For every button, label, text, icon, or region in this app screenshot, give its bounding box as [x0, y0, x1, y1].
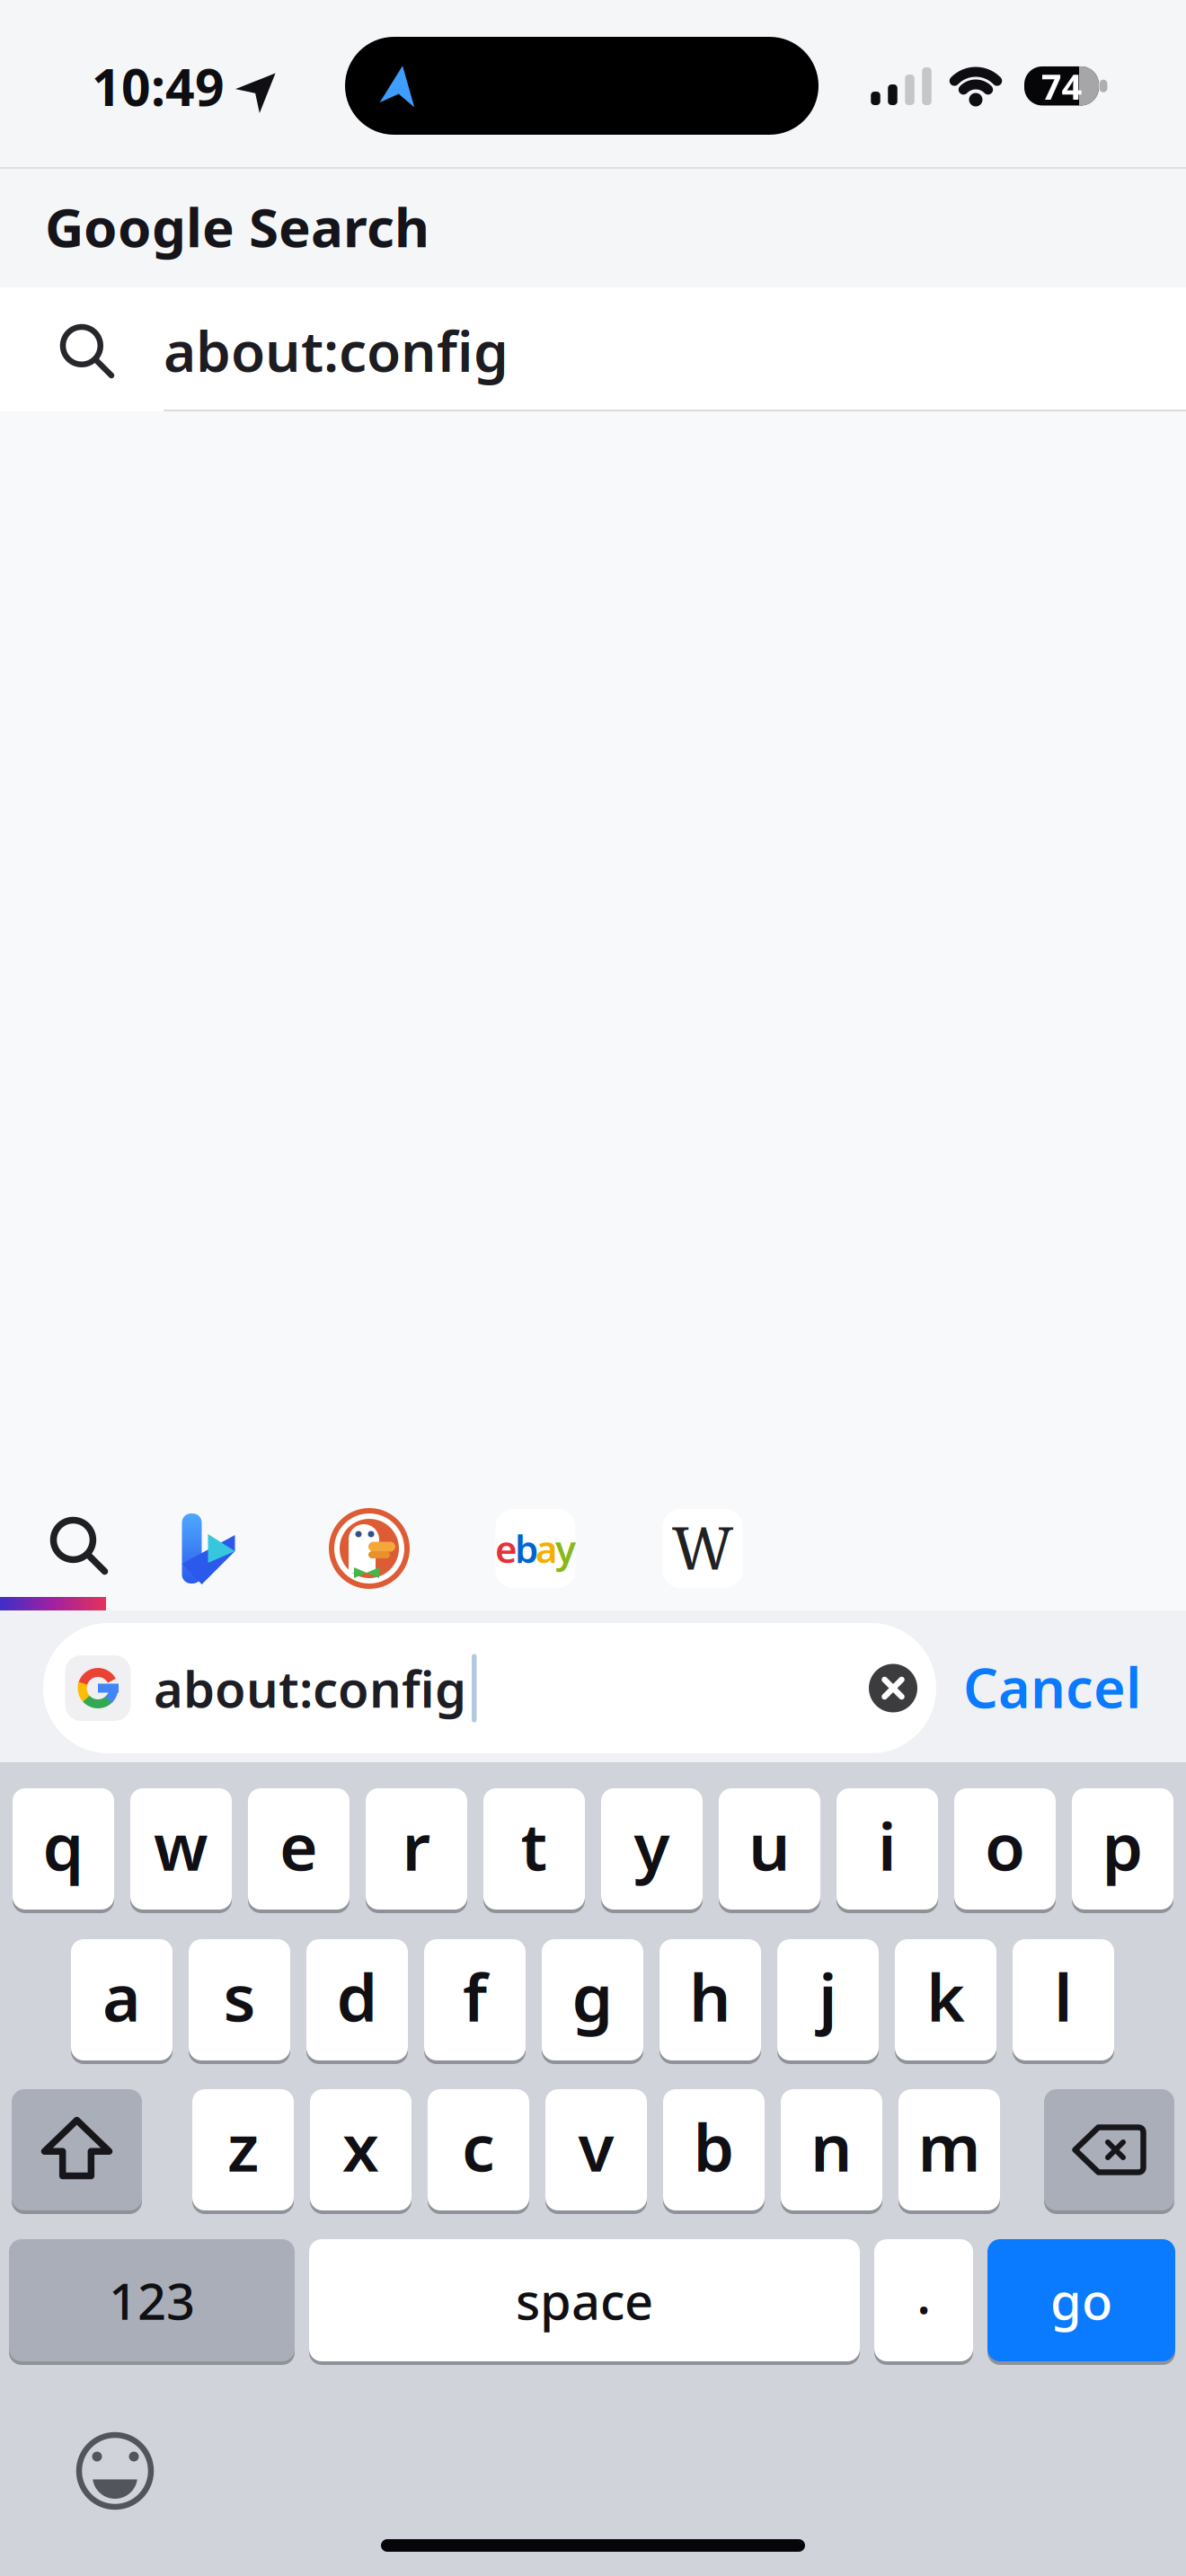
button[interactable]: k [895, 1937, 996, 2062]
button[interactable]: o [954, 1786, 1056, 1911]
button[interactable]: n [781, 2087, 882, 2212]
staticText: b [515, 1523, 538, 1574]
staticText: w [154, 1802, 208, 1889]
button[interactable]: q [13, 1786, 114, 1911]
button[interactable]: go [987, 2237, 1175, 2363]
button[interactable]: g [542, 1937, 643, 2062]
button[interactable]: Wikipedia [663, 1508, 743, 1589]
staticText: Google Search [45, 191, 429, 262]
button[interactable]: DuckDuckGo [329, 1508, 410, 1589]
staticText: d [336, 1953, 378, 2040]
staticText: u [748, 1802, 791, 1889]
button[interactable]: f [424, 1937, 526, 2062]
staticText: a [535, 1523, 558, 1574]
staticText: y [634, 1802, 670, 1889]
staticText: about:config [154, 1655, 466, 1722]
staticText: Cancel [963, 1650, 1141, 1723]
button[interactable]: space [309, 2237, 860, 2363]
staticText: e [279, 1802, 318, 1889]
button[interactable]: d [306, 1937, 408, 2062]
button[interactable]: about:config [0, 287, 1186, 411]
button[interactable]: x [310, 2087, 412, 2212]
button[interactable]: u [719, 1786, 820, 1911]
staticText: 10:49 [92, 52, 225, 120]
staticText: 74 [1041, 62, 1082, 110]
staticText: i [878, 1802, 897, 1889]
staticText: l [1054, 1953, 1073, 2040]
button[interactable]: z [192, 2087, 294, 2212]
staticText: f [463, 1953, 487, 2040]
button[interactable]: Shift [12, 2087, 142, 2212]
staticText: z [227, 2103, 259, 2190]
button[interactable]: . [874, 2237, 973, 2363]
button[interactable]: about:config [43, 1623, 936, 1753]
button[interactable]: b [663, 2087, 765, 2212]
button[interactable]: p [1072, 1786, 1173, 1911]
button[interactable]: Cancel [963, 1650, 1141, 1723]
staticText: s [223, 1953, 256, 2040]
button[interactable]: Bing [174, 1513, 232, 1584]
button[interactable]: y [601, 1786, 703, 1911]
button[interactable]: eBay [495, 1509, 576, 1588]
button[interactable]: v [545, 2087, 647, 2212]
staticText: n [810, 2103, 853, 2190]
staticText: h [689, 1953, 731, 2040]
button[interactable]: w [130, 1786, 232, 1911]
staticText: c [462, 2103, 495, 2190]
button[interactable]: a [71, 1937, 173, 2062]
button[interactable]: l [1013, 1937, 1114, 2062]
staticText: a [102, 1953, 141, 2040]
staticText: m [918, 2103, 981, 2190]
staticText: k [926, 1953, 965, 2040]
staticText: g [572, 1953, 613, 2040]
staticText: 123 [109, 2267, 195, 2334]
button[interactable]: j [777, 1937, 879, 2062]
staticText: q [43, 1802, 84, 1889]
staticText: about:config [164, 313, 509, 387]
staticText: W [672, 1506, 734, 1587]
button[interactable]: r [366, 1786, 467, 1911]
staticText: . [916, 2257, 931, 2329]
staticText: x [342, 2103, 379, 2190]
staticText: y [555, 1523, 576, 1574]
button[interactable]: s [189, 1937, 290, 2062]
button[interactable]: Emoji [78, 2434, 152, 2508]
button[interactable]: t [483, 1786, 585, 1911]
button[interactable]: Delete [1044, 2087, 1174, 2212]
staticText: p [1102, 1802, 1143, 1889]
staticText: space [516, 2267, 653, 2334]
button[interactable]: h [659, 1937, 761, 2062]
staticText: b [693, 2103, 735, 2190]
button[interactable]: c [428, 2087, 529, 2212]
staticText: t [521, 1802, 548, 1889]
staticText: j [819, 1953, 837, 2040]
staticText: v [578, 2103, 614, 2190]
staticText: go [1050, 2267, 1112, 2334]
button[interactable]: Search suggestions [52, 1518, 106, 1573]
staticText: e [495, 1523, 518, 1574]
button[interactable]: i [836, 1786, 938, 1911]
staticText: o [985, 1802, 1025, 1889]
button[interactable]: m [898, 2087, 1000, 2212]
button[interactable]: e [248, 1786, 350, 1911]
button[interactable]: 123 [9, 2237, 295, 2363]
staticText: r [402, 1802, 431, 1889]
